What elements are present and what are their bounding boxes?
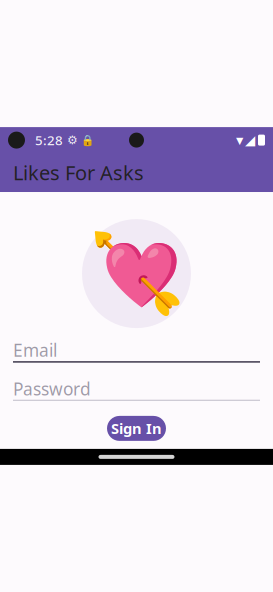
staticText: 5:28: [35, 131, 63, 149]
staticText: ⚙: [67, 133, 78, 147]
staticText: ▾: [236, 132, 243, 148]
staticText: Likes For Asks: [13, 159, 144, 186]
staticText: ◢: [245, 132, 255, 148]
staticText: Email: [13, 339, 57, 362]
staticText: Password: [13, 377, 91, 400]
staticText: Sign In: [111, 419, 162, 438]
button[interactable]: Sign In: [107, 416, 166, 441]
staticText: 💘: [88, 229, 184, 318]
staticText: 🔒: [81, 134, 94, 146]
